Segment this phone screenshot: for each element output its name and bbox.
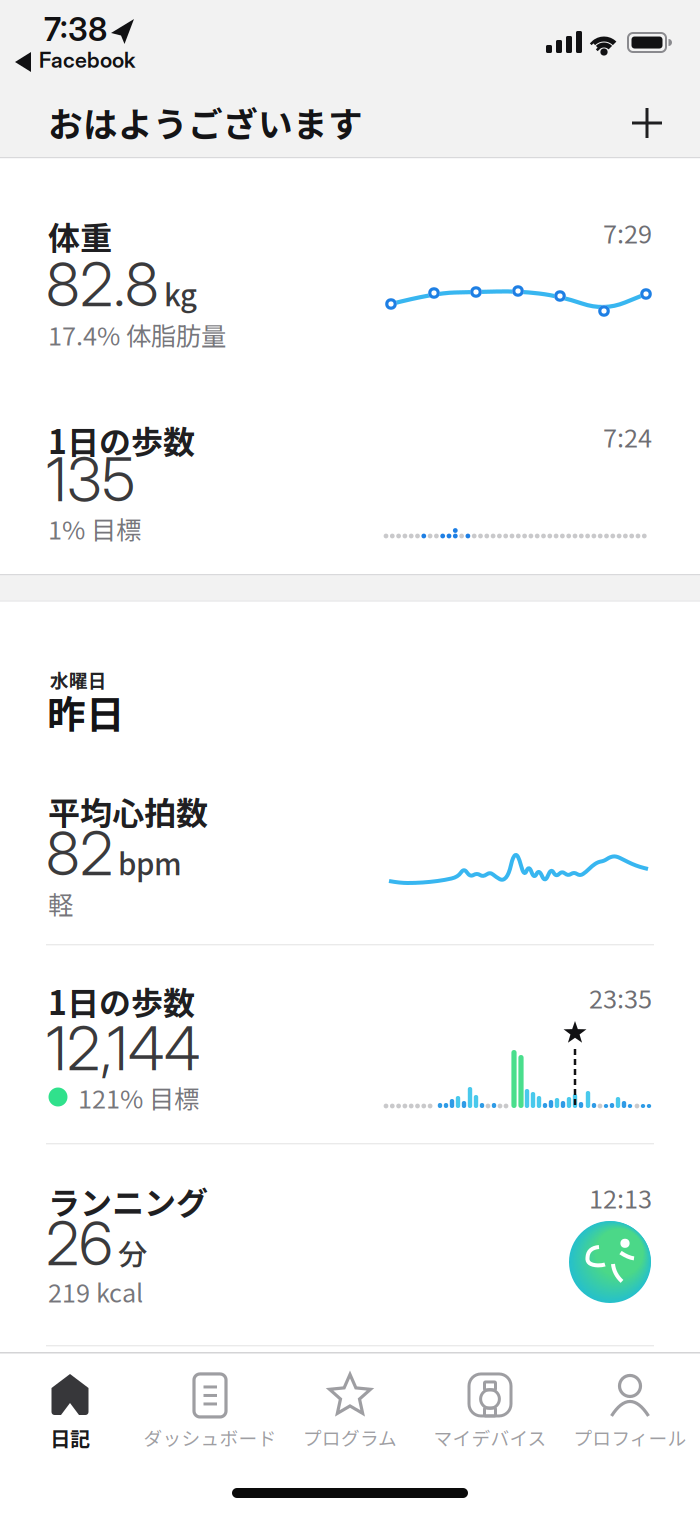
- staticText: ランニング: [48, 1178, 208, 1224]
- staticText: Facebook: [39, 47, 135, 73]
- staticText: bpm: [118, 841, 182, 884]
- button[interactable]: 追加: [619, 95, 675, 151]
- staticText: 1日の歩数: [48, 978, 195, 1024]
- staticText: 昨日: [47, 684, 125, 740]
- button[interactable]: ダッシュボード: [140, 1369, 280, 1451]
- button[interactable]: 1日の歩数: [0, 975, 700, 1143]
- staticText: 135: [46, 443, 135, 516]
- staticText: プロフィール: [573, 1424, 686, 1451]
- staticText: ダッシュボード: [143, 1424, 276, 1451]
- staticText: 7:24: [603, 418, 652, 455]
- staticText: kg: [164, 272, 197, 315]
- staticText: 水曜日: [50, 666, 107, 693]
- button[interactable]: プログラム: [280, 1369, 420, 1451]
- staticText: プログラム: [303, 1424, 397, 1451]
- staticText: マイデバイス: [433, 1424, 546, 1451]
- staticText: 23:35: [589, 979, 652, 1016]
- button[interactable]: ランニング: [0, 1175, 700, 1310]
- staticText: 体重: [48, 213, 112, 259]
- button[interactable]: 体重: [0, 210, 700, 360]
- staticText: おはようございます: [48, 97, 363, 147]
- button[interactable]: マイデバイス: [420, 1369, 560, 1451]
- button[interactable]: 平均心拍数: [0, 785, 700, 935]
- staticText: 1% 目標: [48, 510, 141, 547]
- staticText: 121% 目標: [78, 1079, 199, 1116]
- staticText: 日記: [50, 1423, 90, 1452]
- staticText: 軽: [48, 885, 73, 922]
- staticText: 平均心拍数: [48, 788, 208, 834]
- staticText: 12,144: [46, 1012, 200, 1085]
- staticText: 7:29: [603, 214, 652, 251]
- staticText: 17.4% 体脂肪量: [48, 316, 226, 353]
- staticText: 219 kcal: [48, 1273, 143, 1310]
- staticText: 82: [46, 817, 113, 890]
- staticText: 7:38: [44, 10, 107, 49]
- staticText: 82.8: [46, 248, 159, 321]
- staticText: 12:13: [589, 1179, 652, 1216]
- button[interactable]: 1日の歩数: [0, 415, 700, 557]
- button[interactable]: プロフィール: [560, 1369, 700, 1451]
- staticText: 26: [46, 1207, 113, 1280]
- staticText: 分: [118, 1231, 147, 1274]
- staticText: 1日の歩数: [48, 417, 195, 463]
- button[interactable]: 日記: [0, 1368, 140, 1452]
